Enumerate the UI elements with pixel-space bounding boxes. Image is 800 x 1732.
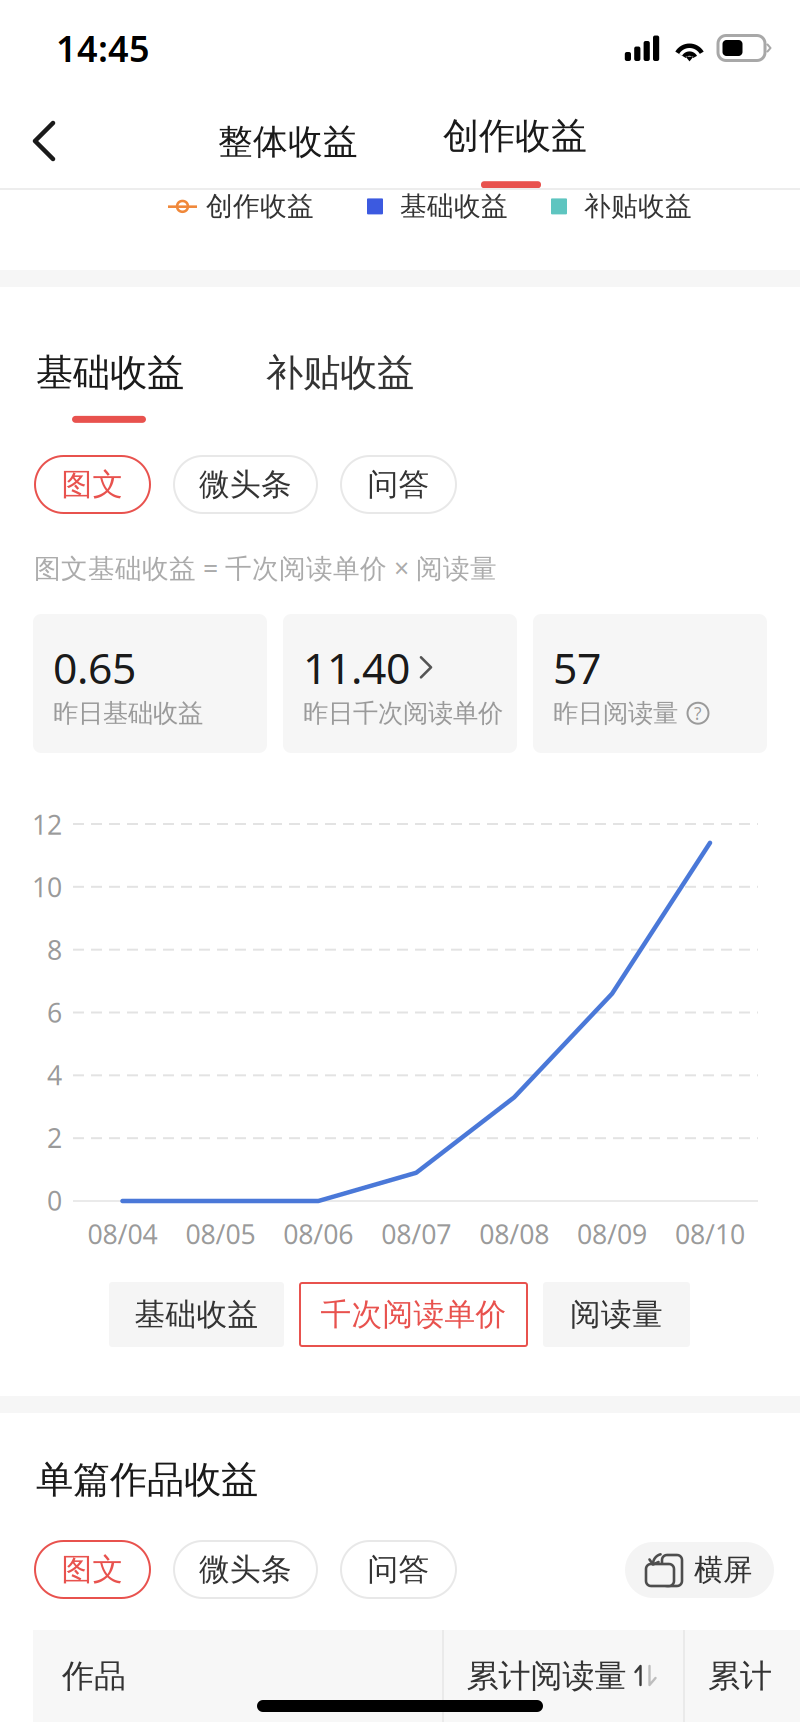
- staticText: 单篇作品收益: [36, 1457, 258, 1503]
- staticText: 横屏: [694, 1552, 752, 1588]
- staticText: 昨日阅读量: [553, 698, 678, 729]
- button[interactable]: 问答: [341, 456, 456, 513]
- staticText: 累计: [708, 1656, 772, 1696]
- staticText: 08/05: [185, 1216, 255, 1252]
- staticText: 微头条: [199, 1551, 292, 1588]
- button[interactable]: 阅读量: [544, 1283, 689, 1346]
- staticText: 累计阅读量: [466, 1656, 626, 1696]
- button[interactable]: 图文: [35, 1541, 150, 1598]
- staticText: 4: [47, 1057, 62, 1093]
- button[interactable]: 问答: [341, 1541, 456, 1598]
- staticText: 11.40: [303, 639, 410, 696]
- staticText: 基础收益: [36, 350, 184, 396]
- staticText: 0: [47, 1183, 62, 1218]
- button[interactable]: 横屏: [625, 1542, 774, 1598]
- staticText: 14:45: [56, 24, 150, 72]
- staticText: 补贴收益: [266, 350, 414, 396]
- staticText: 08/04: [87, 1216, 157, 1252]
- staticText: 作品: [62, 1656, 126, 1696]
- button[interactable]: 创作收益: [443, 114, 587, 188]
- staticText: 08/10: [675, 1216, 745, 1252]
- button[interactable]: 微头条: [174, 456, 317, 513]
- staticText: 图文: [61, 1551, 123, 1588]
- staticText: 08/07: [381, 1216, 451, 1252]
- staticText: 57: [553, 639, 601, 696]
- button[interactable]: 整体收益: [218, 120, 358, 164]
- staticText: 创作收益: [443, 114, 587, 158]
- staticText: 08/08: [479, 1216, 549, 1252]
- staticText: 千次阅读单价: [320, 1296, 506, 1333]
- staticText: 昨日基础收益: [53, 698, 203, 729]
- staticText: 图文基础收益 = 千次阅读单价 × 阅读量: [34, 550, 497, 585]
- staticText: 创作收益: [206, 190, 314, 223]
- staticText: 08/06: [283, 1216, 353, 1252]
- button[interactable]: 补贴收益: [266, 350, 414, 396]
- staticText: 阅读量: [570, 1296, 663, 1333]
- button[interactable]: 基础收益: [36, 350, 184, 423]
- staticText: 2: [47, 1120, 62, 1155]
- staticText: 补贴收益: [584, 190, 692, 223]
- staticText: 昨日千次阅读单价: [303, 698, 503, 729]
- staticText: 问答: [367, 1551, 429, 1588]
- staticText: 6: [47, 995, 62, 1030]
- staticText: 08/09: [577, 1216, 647, 1252]
- staticText: 0.65: [53, 639, 136, 696]
- staticText: 整体收益: [218, 121, 358, 163]
- button[interactable]: Back: [14, 100, 76, 182]
- button[interactable]: 千次阅读单价: [300, 1283, 527, 1346]
- button[interactable]: 基础收益: [110, 1283, 283, 1346]
- staticText: 基础收益: [134, 1296, 258, 1333]
- staticText: ?: [694, 702, 702, 725]
- button[interactable]: 微头条: [174, 1541, 317, 1598]
- staticText: 12: [32, 807, 62, 842]
- button[interactable]: 图文: [35, 456, 150, 513]
- staticText: 10: [32, 869, 62, 905]
- staticText: 8: [47, 932, 62, 967]
- staticText: 图文: [61, 466, 123, 503]
- staticText: 问答: [367, 466, 429, 503]
- staticText: 基础收益: [400, 190, 508, 223]
- staticText: 微头条: [199, 466, 292, 503]
